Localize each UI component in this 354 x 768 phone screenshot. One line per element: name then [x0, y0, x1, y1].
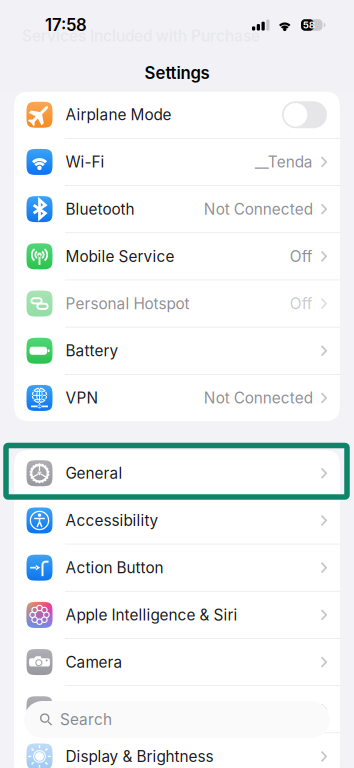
- button[interactable]: Wi-Fi: [14, 139, 340, 185]
- button[interactable]: Bluetooth: [14, 186, 340, 232]
- button[interactable]: VPN: [14, 375, 340, 421]
- button[interactable]: Action Button: [14, 544, 340, 591]
- button[interactable]: Camera: [14, 639, 340, 685]
- button[interactable]: Display & Brightness: [14, 733, 340, 768]
- button[interactable]: Accessibility: [14, 497, 340, 544]
- staticText: Search: [60, 710, 112, 728]
- staticText: Not Connected: [204, 200, 313, 218]
- staticText: Apple Intelligence & Siri: [65, 606, 237, 624]
- staticText: Action Button: [65, 559, 163, 577]
- staticText: Bluetooth: [65, 200, 134, 218]
- staticText: Mobile Service: [65, 247, 174, 265]
- staticText: Airplane Mode: [65, 106, 171, 124]
- button[interactable]: Search: [24, 701, 330, 738]
- staticText: Not Connected: [204, 389, 313, 407]
- staticText: Off: [290, 295, 313, 313]
- staticText: Control Centre: [65, 700, 171, 718]
- staticText: Battery: [65, 342, 118, 360]
- button[interactable]: Apple Intelligence & Siri: [14, 592, 340, 638]
- staticText: Personal Hotspot: [65, 295, 189, 313]
- button[interactable]: Control Centre: [14, 686, 340, 732]
- staticText: Accessibility: [65, 511, 158, 529]
- staticText: Camera: [65, 653, 122, 671]
- button[interactable]: Mobile Service: [14, 233, 340, 280]
- button[interactable]: Battery: [14, 327, 340, 374]
- staticText: Settings: [144, 63, 209, 83]
- button[interactable]: Airplane Mode: [14, 91, 340, 138]
- button[interactable]: Personal Hotspot: [14, 280, 340, 327]
- staticText: General: [65, 464, 122, 482]
- button[interactable]: General: [14, 450, 340, 496]
- staticText: Wi-Fi: [65, 153, 104, 171]
- staticText: 17:58: [45, 15, 87, 35]
- staticText: VPN: [65, 389, 98, 407]
- staticText: Display & Brightness: [65, 747, 213, 765]
- staticText: 58: [303, 19, 315, 31]
- staticText: __Tenda: [255, 153, 313, 171]
- staticText: Off: [290, 247, 313, 265]
- staticText: Services Included with Purchase: [22, 27, 260, 45]
